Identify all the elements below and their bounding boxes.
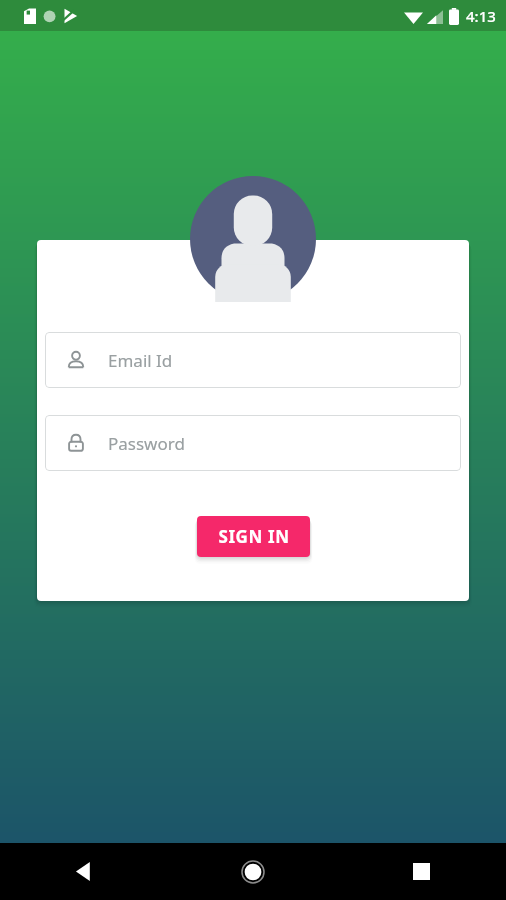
button[interactable]: Password <box>45 415 461 471</box>
staticText: Password <box>108 432 185 455</box>
staticText: Email Id <box>108 349 173 372</box>
button[interactable]: Email Id <box>45 332 461 388</box>
button[interactable]: SIGN IN <box>197 516 310 557</box>
button[interactable]: Home <box>168 843 337 900</box>
staticText: 4:13 <box>466 6 496 26</box>
button[interactable]: Recent apps <box>337 843 506 900</box>
staticText: SIGN IN <box>218 525 290 548</box>
button[interactable]: Back <box>0 843 168 900</box>
